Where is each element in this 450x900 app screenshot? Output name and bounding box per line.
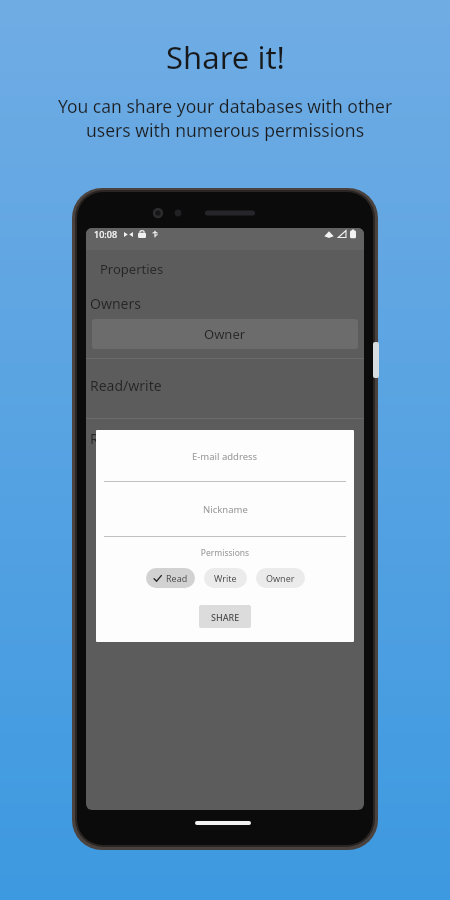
staticText: SHARE xyxy=(211,611,240,623)
staticText: Owners xyxy=(90,294,141,313)
staticText: Owner xyxy=(204,325,246,343)
button[interactable]: E-mail address xyxy=(104,430,346,482)
staticText: Read/write xyxy=(90,376,162,395)
staticText: Read xyxy=(90,429,124,448)
button[interactable]: SHARE xyxy=(199,605,251,628)
button[interactable]: Owner xyxy=(92,319,358,349)
staticText: Nickname xyxy=(203,503,248,516)
staticText: Permissions xyxy=(96,547,354,559)
button[interactable]: Owner xyxy=(256,568,305,588)
button[interactable]: Write xyxy=(204,568,247,588)
staticText: Owner xyxy=(266,572,295,584)
staticText: Read xyxy=(166,572,188,584)
staticText: Properties xyxy=(100,260,164,278)
staticText: 10:08 xyxy=(94,228,118,240)
staticText: You can share your databases with other … xyxy=(40,94,410,142)
button[interactable]: Nickname xyxy=(104,482,346,537)
button[interactable]: Read xyxy=(146,568,195,588)
staticText: Write xyxy=(214,572,237,584)
staticText: E-mail address xyxy=(192,450,258,463)
staticText: Share it! xyxy=(166,36,285,78)
